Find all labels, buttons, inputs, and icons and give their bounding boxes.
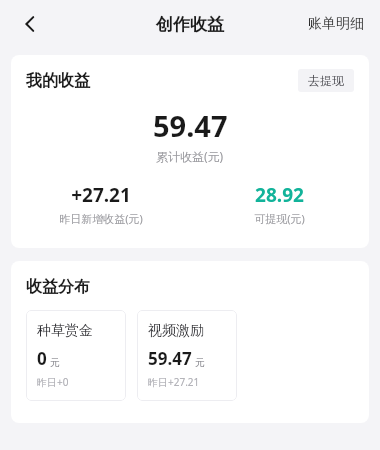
button[interactable]: Back — [10, 4, 50, 44]
staticText: 创作收益 — [156, 14, 224, 35]
button[interactable]: 账单明细 — [302, 9, 370, 39]
staticText: 去提现 — [308, 73, 344, 88]
staticText: 昨日+27.21 — [148, 375, 200, 389]
staticText: 元 — [50, 356, 60, 369]
button[interactable]: 种草赏金 — [26, 310, 126, 401]
button[interactable]: 视频激励 — [137, 310, 237, 401]
staticText: 我的收益 — [26, 71, 90, 91]
staticText: 昨日新增收益(元) — [59, 211, 143, 226]
button[interactable]: 去提现 — [298, 69, 354, 92]
staticText: 种草赏金 — [37, 322, 93, 340]
staticText: +27.21 — [71, 182, 131, 208]
staticText: 元 — [195, 356, 205, 369]
staticText: 昨日+0 — [37, 375, 69, 389]
staticText: 0 — [37, 347, 47, 370]
staticText: 视频激励 — [148, 322, 204, 340]
staticText: 收益分布 — [26, 277, 90, 297]
staticText: 账单明细 — [308, 15, 364, 33]
staticText: 累计收益(元) — [156, 148, 224, 164]
staticText: 可提现(元) — [254, 211, 305, 226]
staticText: 59.47 — [148, 347, 192, 370]
staticText: 59.47 — [153, 106, 228, 145]
staticText: 28.92 — [255, 182, 304, 208]
